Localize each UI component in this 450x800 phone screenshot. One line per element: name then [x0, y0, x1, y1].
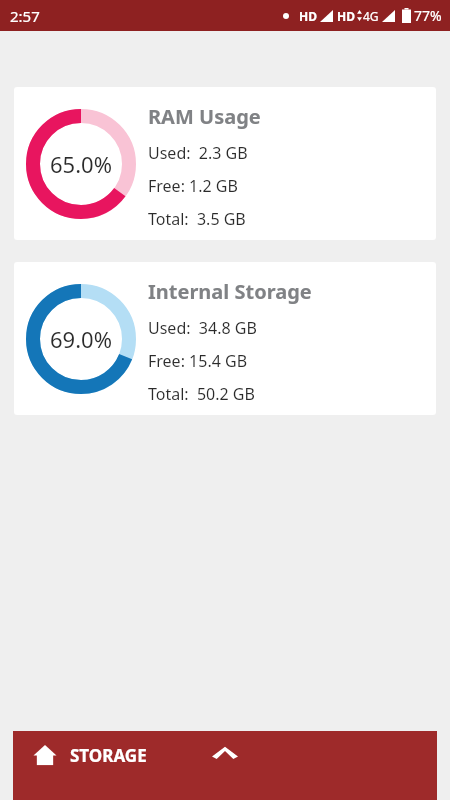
staticText: Used: 2.3 GB [148, 142, 248, 164]
staticText: 4G [363, 8, 379, 24]
staticText: 77% [414, 6, 442, 25]
button[interactable]: STORAGE [33, 743, 147, 767]
staticText: Total: 50.2 GB [148, 383, 255, 405]
staticText: 69.0% [50, 324, 112, 354]
staticText: HD [337, 8, 355, 24]
staticText: Used: 34.8 GB [148, 317, 257, 339]
button[interactable]: Expand [203, 739, 247, 765]
staticText: HD [299, 8, 317, 24]
staticText: RAM Usage [148, 103, 261, 130]
staticText: Free: 1.2 GB [148, 175, 238, 197]
button[interactable]: 69.0% [14, 262, 436, 415]
staticText: Free: 15.4 GB [148, 350, 248, 372]
button[interactable]: 65.0% [14, 87, 436, 240]
staticText: Internal Storage [148, 278, 312, 305]
staticText: 65.0% [50, 149, 112, 179]
staticText: Total: 3.5 GB [148, 208, 246, 230]
staticText: STORAGE [70, 744, 147, 767]
staticText: 2:57 [10, 6, 40, 26]
